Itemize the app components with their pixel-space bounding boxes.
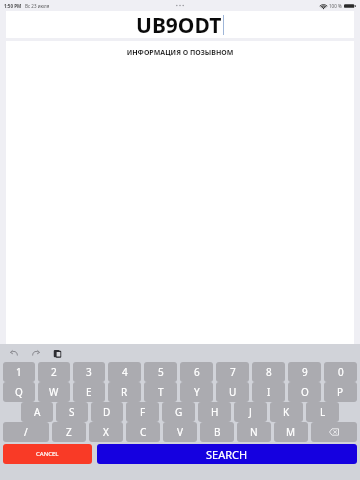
- staticText: 8: [266, 365, 272, 379]
- staticText: Z: [66, 425, 72, 439]
- button[interactable]: J: [234, 402, 267, 422]
- button[interactable]: X: [89, 422, 123, 442]
- button[interactable]: E: [73, 382, 105, 402]
- button[interactable]: 2: [38, 362, 70, 382]
- button[interactable]: F: [126, 402, 159, 422]
- staticText: 1: [16, 365, 22, 379]
- button[interactable]: W: [38, 382, 70, 402]
- staticText: F: [140, 405, 146, 419]
- staticText: C: [140, 425, 147, 439]
- staticText: J: [249, 405, 252, 419]
- staticText: T: [158, 385, 164, 399]
- button[interactable]: P: [324, 382, 357, 402]
- button[interactable]: S: [56, 402, 88, 422]
- button[interactable]: 8: [252, 362, 285, 382]
- button[interactable]: CANCEL: [3, 444, 92, 464]
- staticText: UB9ODT: [136, 11, 222, 38]
- staticText: N: [250, 425, 258, 439]
- staticText: X: [103, 425, 109, 439]
- staticText: 100 %: [329, 3, 342, 9]
- button[interactable]: SEARCH: [97, 444, 357, 464]
- staticText: ИНФОРМАЦИЯ О ПОЗЫВНОМ: [6, 48, 354, 58]
- button[interactable]: Z: [52, 422, 86, 442]
- button[interactable]: UB9ODT: [6, 11, 354, 38]
- button[interactable]: O: [288, 382, 321, 402]
- button[interactable]: Paste: [52, 348, 63, 359]
- staticText: 2: [51, 365, 57, 379]
- staticText: E: [86, 385, 92, 399]
- button[interactable]: B: [200, 422, 234, 442]
- button[interactable]: 0: [324, 362, 357, 382]
- button[interactable]: Redo: [30, 347, 42, 359]
- button[interactable]: 6: [180, 362, 213, 382]
- staticText: W: [49, 385, 59, 399]
- button[interactable]: U: [216, 382, 249, 402]
- staticText: Q: [15, 385, 23, 399]
- staticText: S: [69, 405, 75, 419]
- staticText: D: [103, 405, 111, 419]
- staticText: 7: [230, 365, 236, 379]
- button[interactable]: 1: [3, 362, 35, 382]
- button[interactable]: N: [237, 422, 271, 442]
- staticText: L: [320, 405, 326, 419]
- button[interactable]: 4: [108, 362, 141, 382]
- button[interactable]: 5: [144, 362, 177, 382]
- staticText: I: [267, 385, 271, 399]
- staticText: M: [286, 425, 296, 439]
- button[interactable]: R: [108, 382, 141, 402]
- staticText: O: [301, 385, 309, 399]
- button[interactable]: T: [144, 382, 177, 402]
- staticText: Вс 23 июля: [25, 3, 50, 9]
- button[interactable]: Undo: [8, 347, 20, 359]
- staticText: 0: [338, 365, 344, 379]
- staticText: R: [121, 385, 128, 399]
- staticText: Y: [194, 385, 200, 399]
- staticText: 3: [86, 365, 92, 379]
- button[interactable]: I: [252, 382, 285, 402]
- staticText: H: [211, 405, 219, 419]
- button[interactable]: G: [162, 402, 195, 422]
- staticText: P: [337, 385, 344, 399]
- staticText: /: [24, 425, 28, 439]
- button[interactable]: C: [126, 422, 160, 442]
- staticText: 9: [302, 365, 308, 379]
- button[interactable]: 9: [288, 362, 321, 382]
- button[interactable]: L: [306, 402, 339, 422]
- button[interactable]: M: [274, 422, 308, 442]
- button[interactable]: K: [270, 402, 303, 422]
- staticText: B: [214, 425, 221, 439]
- button[interactable]: Y: [180, 382, 213, 402]
- staticText: U: [229, 385, 237, 399]
- button[interactable]: /: [3, 422, 49, 442]
- staticText: 4: [122, 365, 128, 379]
- staticText: V: [177, 425, 183, 439]
- button[interactable]: D: [91, 402, 123, 422]
- button[interactable]: V: [163, 422, 197, 442]
- button[interactable]: H: [198, 402, 231, 422]
- button[interactable]: 3: [73, 362, 105, 382]
- button[interactable]: Backspace: [311, 422, 357, 442]
- staticText: A: [34, 405, 41, 419]
- button[interactable]: 7: [216, 362, 249, 382]
- staticText: 1:50 PM: [4, 3, 22, 9]
- staticText: SEARCH: [206, 447, 248, 462]
- button[interactable]: Q: [3, 382, 35, 402]
- button[interactable]: A: [21, 402, 53, 422]
- staticText: 6: [194, 365, 200, 379]
- staticText: CANCEL: [36, 450, 59, 458]
- staticText: K: [283, 405, 290, 419]
- staticText: 5: [158, 365, 164, 379]
- staticText: G: [175, 405, 183, 419]
